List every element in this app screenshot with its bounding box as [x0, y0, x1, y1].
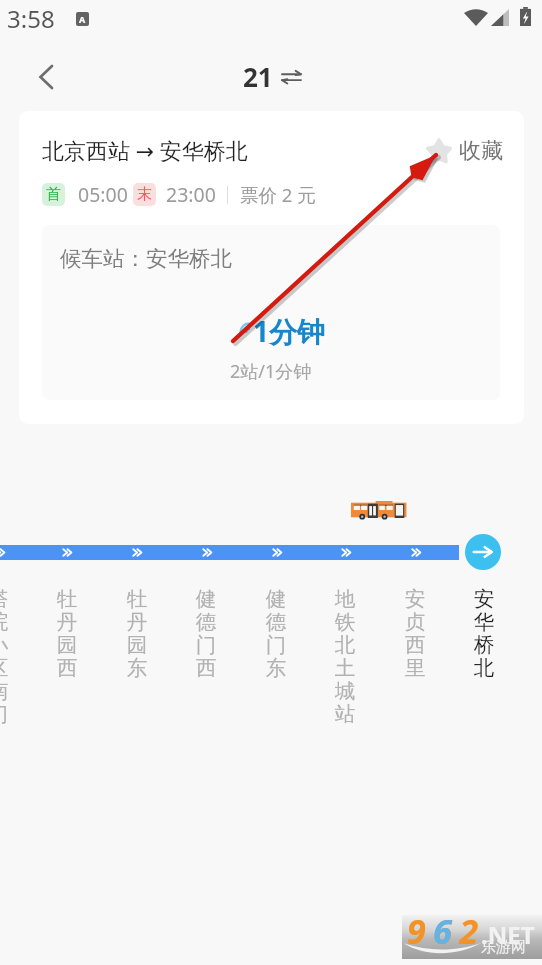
button[interactable]: 地 铁 北 土 城 站 — [330, 586, 360, 727]
staticText: 地 铁 北 土 城 站 — [330, 586, 360, 727]
staticText: .NET — [481, 918, 535, 951]
staticText: 票价 2 元 — [240, 182, 316, 207]
staticText: 收藏 — [459, 137, 503, 165]
staticText: 健 德 门 东 — [261, 586, 291, 681]
button[interactable]: 牡 丹 园 西 — [52, 586, 82, 681]
staticText: 末 — [137, 185, 152, 204]
button[interactable]: 安 华 桥 北 — [469, 586, 499, 681]
staticText: 2站/1分钟 — [230, 359, 312, 384]
staticText: 牡 丹 园 西 — [52, 586, 82, 681]
staticText: A — [79, 13, 86, 25]
button[interactable]: 收藏 — [426, 137, 503, 165]
button[interactable]: Arrive — [465, 534, 501, 570]
staticText: 05:00 — [78, 181, 128, 208]
button[interactable]: 候车站：安华桥北 — [42, 225, 500, 400]
button[interactable]: 安 贞 西 里 — [400, 586, 430, 681]
staticText: 23:00 — [166, 181, 216, 208]
staticText: 3:58 — [7, 2, 55, 35]
staticText: 候车站：安华桥北 — [60, 245, 232, 272]
staticText: 乐游网 — [481, 938, 526, 957]
button[interactable]: Back — [22, 53, 70, 101]
button[interactable]: 北京西站 → 安华桥北 — [19, 111, 524, 424]
staticText: 21 — [243, 59, 273, 94]
staticText: 首 — [46, 185, 61, 204]
button[interactable]: 健 德 门 西 — [191, 586, 221, 681]
staticText: 6 — [433, 908, 452, 952]
staticText: 962 — [407, 908, 486, 952]
button[interactable]: 牡 丹 园 东 — [122, 586, 152, 681]
staticText: 安 贞 西 里 — [400, 586, 430, 681]
staticText: 北京西站 → 安华桥北 — [42, 135, 248, 165]
staticText: 牡 丹 园 东 — [122, 586, 152, 681]
button[interactable]: 塔 院 小 区 南 门 — [0, 586, 13, 727]
staticText: 塔 院 小 区 南 门 — [0, 586, 13, 727]
button[interactable]: 健 德 门 东 — [261, 586, 291, 681]
staticText: 健 德 门 西 — [191, 586, 221, 681]
staticText: 1分钟 — [253, 312, 326, 350]
staticText: 安 华 桥 北 — [469, 586, 499, 681]
button[interactable]: Route 21, switch direction — [236, 55, 310, 91]
